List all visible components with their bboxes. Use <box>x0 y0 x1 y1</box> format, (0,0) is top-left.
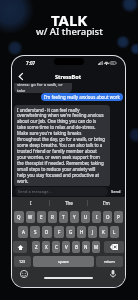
button[interactable]: J <box>88 226 97 238</box>
button[interactable]: U <box>81 211 90 223</box>
staticText: 7:07 <box>26 60 36 66</box>
button[interactable]: Send a message... <box>18 187 105 196</box>
button[interactable]: G <box>66 226 75 238</box>
staticText: w/ AI therapist <box>36 25 103 38</box>
button[interactable]: T <box>59 211 68 223</box>
button[interactable]: R <box>48 211 57 223</box>
button[interactable]: P <box>114 211 123 223</box>
button[interactable]: S <box>30 226 40 238</box>
staticText: T <box>62 214 65 220</box>
button[interactable]: Z <box>32 241 40 253</box>
button[interactable]: N <box>82 241 90 253</box>
button[interactable]: F <box>54 226 64 238</box>
staticText: O <box>106 214 110 220</box>
button[interactable]: W <box>26 211 35 223</box>
button[interactable]: V <box>62 241 70 253</box>
button[interactable]: I <box>92 211 101 223</box>
staticText: A <box>22 229 25 235</box>
staticText: W <box>28 214 33 220</box>
staticText: G <box>69 229 73 235</box>
staticText: I <box>96 214 98 220</box>
button[interactable]: I <box>12 197 49 209</box>
button[interactable]: Emoji <box>20 270 28 278</box>
staticText: L <box>113 229 116 235</box>
button[interactable]: L <box>110 226 119 238</box>
button[interactable]: I understand - it can feel really overwh… <box>17 107 105 185</box>
staticText: StressBot <box>55 73 82 80</box>
staticText: X <box>45 244 48 250</box>
staticText: R <box>51 214 54 220</box>
staticText: I'm <box>103 200 110 206</box>
staticText: stress: go for a walk, or take <box>17 83 69 93</box>
button[interactable]: Send <box>111 189 121 194</box>
button[interactable]: A <box>18 226 28 238</box>
staticText: E <box>40 214 43 220</box>
button[interactable]: Delete <box>104 241 124 253</box>
button[interactable]: D <box>42 226 52 238</box>
staticText: I understand - it can feel really overwh… <box>17 107 105 185</box>
button[interactable]: C <box>52 241 60 253</box>
staticText: B <box>75 244 78 250</box>
button[interactable]: I'm <box>88 197 125 209</box>
staticText: M <box>94 244 99 250</box>
staticText: P <box>117 214 120 220</box>
staticText: D <box>45 229 49 235</box>
staticText: The <box>65 200 73 206</box>
staticText: N <box>84 244 88 250</box>
button[interactable]: X <box>42 241 50 253</box>
staticText: space <box>58 259 69 264</box>
staticText: return <box>104 259 115 264</box>
button[interactable]: Shift <box>13 241 27 253</box>
button[interactable]: B <box>72 241 80 253</box>
staticText: Y <box>73 214 76 220</box>
staticText: TALK <box>51 10 88 30</box>
button[interactable]: K <box>99 226 108 238</box>
staticText: F <box>58 229 61 235</box>
staticText: K <box>102 229 105 235</box>
button[interactable]: I'm feeling really anxious about work <box>44 94 120 100</box>
staticText: Send <box>111 189 121 194</box>
staticText: I <box>30 200 32 206</box>
staticText: Z <box>35 244 38 250</box>
staticText: 123 <box>19 259 26 264</box>
button[interactable]: M <box>92 241 100 253</box>
staticText: J <box>92 229 94 235</box>
staticText: Send a message... <box>18 189 52 194</box>
button[interactable]: E <box>37 211 46 223</box>
button[interactable]: 123 <box>14 256 31 267</box>
button[interactable]: Y <box>70 211 79 223</box>
staticText: S <box>34 229 37 235</box>
staticText: U <box>84 214 88 220</box>
staticText: I'm feeling really anxious about work <box>44 94 120 100</box>
button[interactable]: The <box>50 197 87 209</box>
staticText: Q <box>17 214 21 220</box>
staticText: H <box>80 229 84 235</box>
button[interactable]: Q <box>14 211 24 223</box>
button[interactable]: O <box>103 211 112 223</box>
button[interactable]: space <box>33 256 94 267</box>
other: Shift <box>17 244 24 251</box>
staticText: V <box>65 244 68 250</box>
button[interactable]: Voice input <box>109 269 117 277</box>
button[interactable]: return <box>96 256 123 267</box>
button[interactable]: Back <box>16 72 25 81</box>
other: Delete <box>110 244 118 250</box>
button[interactable]: H <box>77 226 86 238</box>
staticText: C <box>55 244 58 250</box>
